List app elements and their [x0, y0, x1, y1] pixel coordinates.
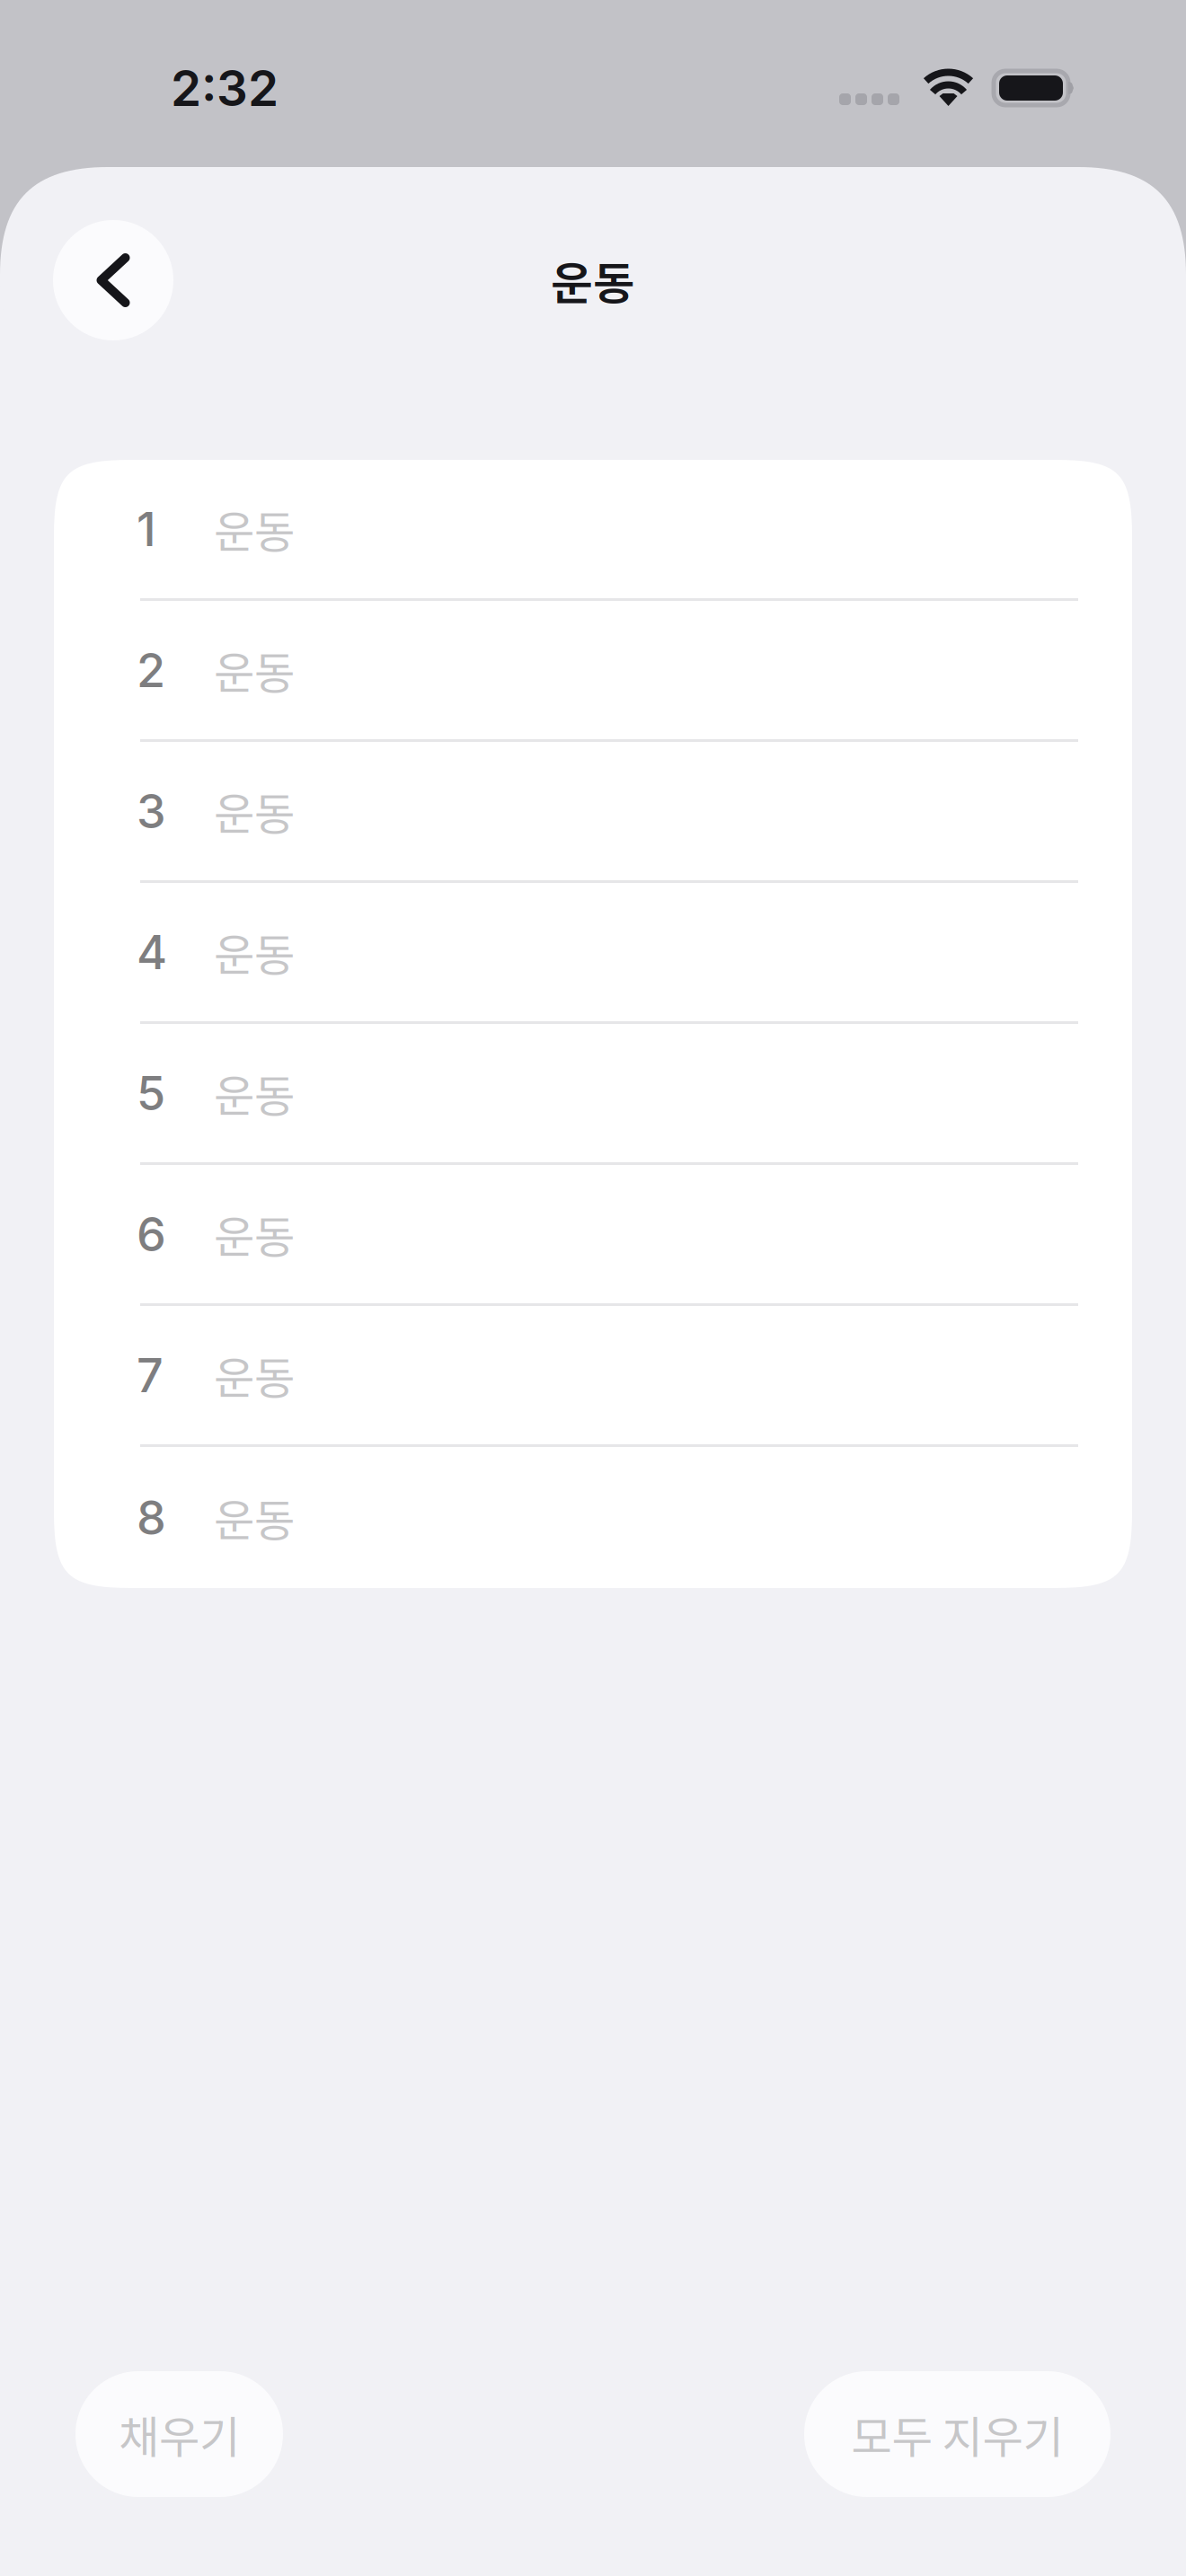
staticText: 운동 — [214, 497, 295, 561]
staticText: 4 — [137, 924, 167, 980]
staticText: 운동 — [551, 247, 635, 313]
button[interactable]: 3 — [54, 742, 1132, 883]
button[interactable]: 4 — [54, 883, 1132, 1024]
button[interactable]: 모두 지우기 — [804, 2371, 1111, 2497]
staticText: 1 — [137, 501, 156, 557]
button[interactable]: 7 — [54, 1306, 1132, 1447]
staticText: 6 — [137, 1206, 166, 1262]
staticText: 운동 — [214, 1343, 295, 1407]
staticText: 운동 — [214, 920, 295, 984]
button[interactable]: 2 — [54, 601, 1132, 742]
staticText: 운동 — [214, 638, 295, 702]
staticText: 5 — [137, 1065, 165, 1121]
button[interactable]: 채우기 — [75, 2371, 283, 2497]
staticText: 운동 — [214, 1202, 295, 1266]
button[interactable]: Back — [53, 220, 173, 340]
staticText: 8 — [137, 1489, 166, 1546]
staticText: 3 — [137, 783, 166, 839]
staticText: 모두 지우기 — [851, 2402, 1063, 2466]
staticText: 운동 — [214, 1061, 295, 1125]
staticText: 운동 — [214, 779, 295, 843]
button[interactable]: 5 — [54, 1024, 1132, 1165]
staticText: 7 — [137, 1347, 164, 1403]
button[interactable]: 6 — [54, 1165, 1132, 1306]
button[interactable]: 8 — [54, 1447, 1132, 1588]
staticText: 채우기 — [119, 2402, 240, 2466]
staticText: 2 — [137, 642, 165, 698]
staticText: 2:32 — [171, 58, 279, 118]
staticText: 운동 — [214, 1485, 295, 1550]
button[interactable]: 1 — [54, 460, 1132, 601]
